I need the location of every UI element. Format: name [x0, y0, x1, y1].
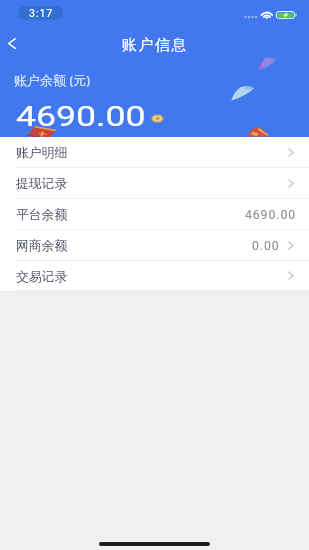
button[interactable]: 账户明细 [0, 137, 309, 167]
staticText: 账户余额 (元) [14, 71, 91, 89]
button[interactable]: 提现记录 [0, 168, 309, 198]
staticText: 4690.00 [16, 101, 147, 133]
button[interactable]: 交易记录 [0, 261, 309, 290]
staticText: 提现记录 [16, 176, 68, 192]
staticText: 4690.00 [245, 208, 297, 222]
staticText: 交易记录 [16, 269, 68, 285]
staticText: 0.00 [252, 239, 280, 253]
button[interactable]: 网商余额 [0, 230, 309, 260]
staticText: 账户信息 [121, 36, 187, 55]
staticText: 账户明细 [16, 145, 68, 161]
staticText: 平台余额 [16, 207, 68, 223]
staticText: 网商余额 [16, 238, 68, 254]
staticText: 3:17 [29, 7, 54, 19]
button[interactable]: 平台余额 [0, 199, 309, 229]
button[interactable]: Back [0, 28, 24, 58]
